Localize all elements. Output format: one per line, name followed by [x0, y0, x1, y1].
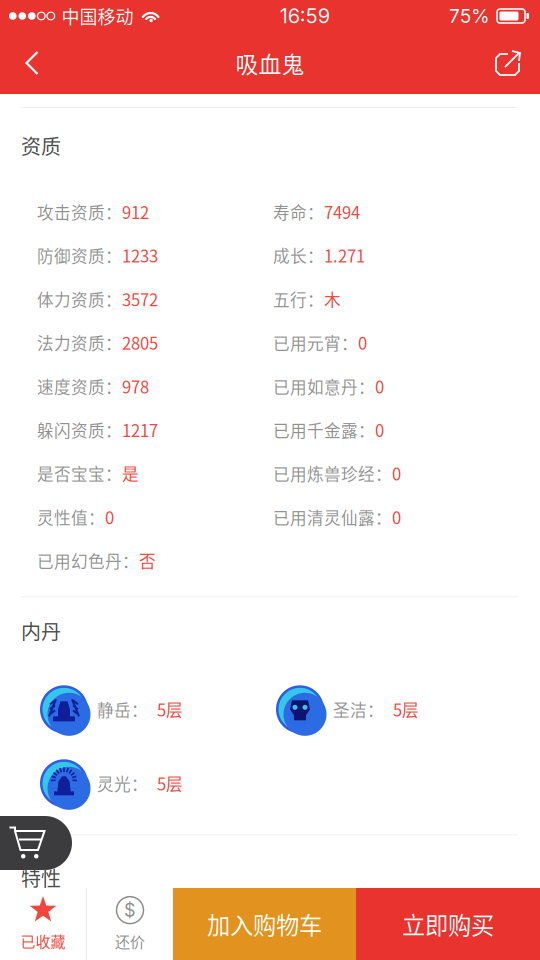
staticText: 已用千金露： — [273, 418, 375, 442]
staticText: 5层 — [157, 697, 183, 721]
staticText: $ — [124, 899, 136, 921]
staticText: 0 — [358, 330, 367, 354]
staticText: 3572 — [122, 287, 158, 311]
staticText: 978 — [122, 374, 149, 398]
staticText: 5层 — [157, 771, 183, 795]
staticText: 5层 — [393, 697, 419, 721]
staticText: 16:59 — [280, 4, 330, 28]
button[interactable]: Shopping cart — [0, 816, 116, 870]
staticText: 圣洁： — [333, 697, 384, 721]
staticText: 是 — [122, 461, 139, 485]
staticText: 灵性值： — [37, 505, 105, 529]
staticText: 内丹 — [21, 616, 61, 645]
staticText: 静岳： — [97, 697, 148, 721]
button[interactable]: 已收藏 — [0, 888, 86, 960]
staticText: 加入购物车 — [207, 907, 322, 941]
staticText: 1217 — [122, 418, 158, 442]
button[interactable]: Back — [4, 32, 60, 94]
staticText: 躲闪资质： — [37, 418, 122, 442]
button[interactable]: $ — [87, 888, 173, 960]
staticText: 已用清灵仙露： — [273, 505, 392, 529]
staticText: 攻击资质： — [37, 200, 122, 224]
button[interactable]: 静岳： — [40, 685, 276, 733]
staticText: 0 — [392, 461, 401, 485]
staticText: 体力资质： — [37, 287, 122, 311]
staticText: 0 — [375, 418, 384, 442]
staticText: 寿命： — [273, 200, 324, 224]
staticText: 灵光： — [97, 771, 148, 795]
staticText: 五行： — [273, 287, 324, 311]
staticText: 立即购买 — [402, 907, 494, 941]
staticText: 防御资质： — [37, 243, 122, 267]
staticText: 75% — [449, 4, 490, 27]
staticText: 2805 — [122, 330, 158, 354]
staticText: 1233 — [122, 243, 158, 267]
staticText: 0 — [392, 505, 401, 529]
staticText: 0 — [375, 374, 384, 398]
staticText: 还价 — [115, 930, 145, 952]
staticText: 资质 — [21, 131, 61, 160]
staticText: 已用幻色丹： — [37, 548, 139, 572]
staticText: 木 — [324, 287, 341, 311]
staticText: 0 — [105, 505, 114, 529]
staticText: 7494 — [324, 200, 360, 224]
staticText: 已用如意丹： — [273, 374, 375, 398]
staticText: 速度资质： — [37, 374, 122, 398]
staticText: 已用炼兽珍经： — [273, 461, 392, 485]
staticText: 特性 — [21, 863, 61, 892]
staticText: 成长： — [273, 243, 324, 267]
staticText: 已收藏 — [20, 930, 65, 952]
button[interactable]: 立即购买 — [356, 888, 540, 960]
staticText: 否 — [139, 548, 156, 572]
staticText: 1.271 — [324, 243, 365, 267]
staticText: 912 — [122, 200, 149, 224]
staticText: 中国移动 — [62, 3, 134, 29]
button[interactable]: Share — [480, 32, 536, 94]
staticText: 法力资质： — [37, 330, 122, 354]
staticText: 吸血鬼 — [235, 46, 304, 79]
button[interactable]: 灵光： — [40, 759, 276, 807]
staticText: 是否宝宝： — [37, 461, 122, 485]
button[interactable]: 圣洁： — [276, 685, 540, 733]
staticText: 已用元宵： — [273, 330, 358, 354]
button[interactable]: 加入购物车 — [173, 888, 356, 960]
